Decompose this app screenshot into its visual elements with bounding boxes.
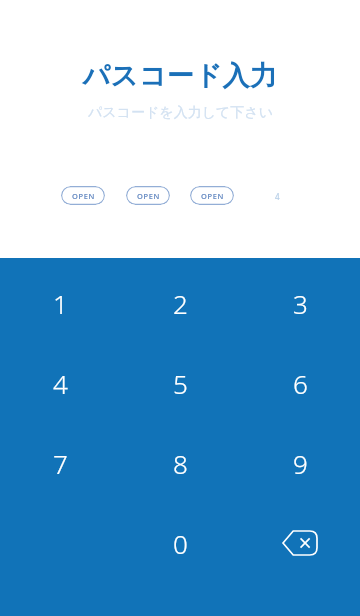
staticText: 8 bbox=[173, 446, 188, 481]
staticText: 5 bbox=[173, 366, 188, 401]
button[interactable]: Backspace bbox=[240, 503, 360, 583]
staticText: 2 bbox=[173, 286, 188, 321]
staticText: 4 bbox=[53, 366, 68, 401]
button[interactable]: 5 bbox=[120, 343, 240, 423]
button[interactable]: 9 bbox=[240, 423, 360, 503]
button[interactable]: 2 bbox=[120, 263, 240, 343]
staticText: OPEN bbox=[201, 191, 224, 201]
button[interactable]: Passcode digit entered bbox=[126, 186, 170, 205]
button[interactable]: Passcode digit entered bbox=[190, 186, 234, 205]
staticText: OPEN bbox=[137, 191, 160, 201]
staticText: 9 bbox=[293, 446, 308, 481]
staticText: 0 bbox=[173, 526, 188, 561]
staticText: パスコードを入力して下さい bbox=[88, 104, 273, 122]
button[interactable]: 4 bbox=[0, 343, 120, 423]
staticText: 3 bbox=[293, 286, 308, 321]
button[interactable]: 0 bbox=[120, 503, 240, 583]
staticText: 7 bbox=[53, 446, 68, 481]
button[interactable]: 3 bbox=[240, 263, 360, 343]
staticText: 1 bbox=[53, 286, 68, 321]
staticText: パスコード入力 bbox=[82, 59, 278, 93]
button[interactable]: Passcode digit pending bbox=[268, 186, 286, 206]
button[interactable]: Passcode digit entered bbox=[61, 186, 105, 205]
staticText: OPEN bbox=[72, 191, 95, 201]
button[interactable]: 1 bbox=[0, 263, 120, 343]
staticText: 4 bbox=[275, 191, 280, 202]
button[interactable]: 7 bbox=[0, 423, 120, 503]
button[interactable]: 6 bbox=[240, 343, 360, 423]
button[interactable]: 8 bbox=[120, 423, 240, 503]
staticText: 6 bbox=[293, 366, 308, 401]
